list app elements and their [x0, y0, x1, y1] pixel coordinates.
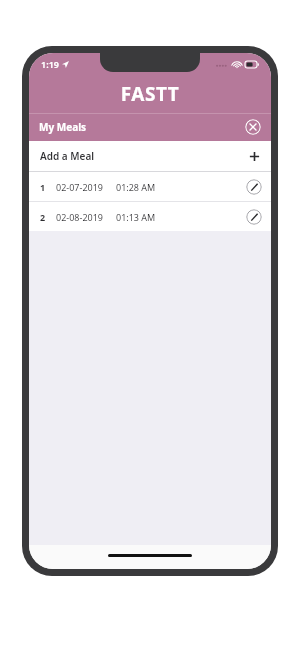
button[interactable]: 1 — [29, 172, 271, 201]
button[interactable]: Edit meal — [246, 209, 262, 225]
staticText: 2 — [40, 211, 56, 223]
button[interactable]: Add a Meal — [29, 141, 271, 171]
staticText: Add a Meal — [40, 149, 95, 163]
staticText: 02-08-2019 — [56, 211, 116, 223]
button[interactable]: 2 — [29, 202, 271, 231]
staticText: 1:19 — [41, 58, 59, 70]
staticText: 02-07-2019 — [56, 181, 116, 193]
button[interactable]: Edit meal — [246, 179, 262, 195]
staticText: FASTT — [29, 81, 271, 107]
staticText: 01:13 AM — [116, 211, 156, 223]
staticText: 01:28 AM — [116, 181, 156, 193]
staticText: 1 — [40, 181, 56, 193]
button[interactable]: Close — [245, 119, 261, 135]
staticText: My Meals — [39, 120, 87, 134]
